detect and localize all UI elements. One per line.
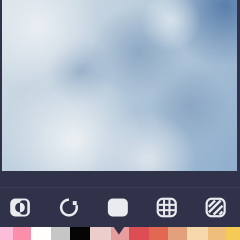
- button[interactable]: Crop: [157, 188, 177, 227]
- button[interactable]: Colour 7: [111, 227, 129, 240]
- button[interactable]: Adjust: [10, 188, 30, 227]
- button[interactable]: Filters: [206, 188, 225, 227]
- button[interactable]: Colour: [108, 188, 128, 227]
- button[interactable]: Rotate: [59, 188, 79, 227]
